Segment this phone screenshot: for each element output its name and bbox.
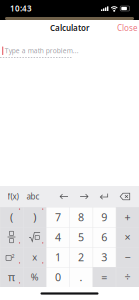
staticText: 10:43: [10, 3, 32, 14]
button[interactable]: 2: [69, 247, 93, 267]
staticText: Type a math problem...: [5, 46, 79, 55]
button[interactable]: 3: [93, 247, 116, 267]
button[interactable]: 6: [93, 227, 116, 247]
button[interactable]: ×: [116, 227, 139, 247]
staticText: 7: [55, 210, 61, 224]
staticText: Close: [117, 23, 138, 33]
staticText: π: [8, 270, 15, 284]
staticText: 5: [78, 230, 84, 244]
staticText: %: [31, 271, 39, 283]
button[interactable]: abc: [23, 186, 43, 207]
button[interactable]: 4: [46, 227, 69, 247]
staticText: f(x): [7, 191, 18, 202]
button[interactable]: 7: [46, 207, 69, 227]
button[interactable]: 2: [0, 247, 23, 267]
button[interactable]: Close: [112, 19, 139, 37]
button[interactable]: Delete: [114, 186, 136, 207]
staticText: x: [32, 251, 37, 263]
staticText: 2: [12, 252, 15, 260]
staticText: Calculator: [50, 23, 89, 33]
button[interactable]: (: [0, 207, 23, 227]
staticText: (: [10, 210, 13, 224]
staticText: ×: [124, 230, 130, 244]
button[interactable]: %: [23, 267, 46, 287]
button[interactable]: 5: [69, 227, 93, 247]
button[interactable]: x: [23, 247, 46, 267]
staticText: −: [124, 250, 130, 264]
button[interactable]: π: [0, 267, 23, 287]
button[interactable]: 1: [46, 247, 69, 267]
staticText: 3: [101, 250, 107, 264]
staticText: abc: [26, 191, 39, 202]
button[interactable]: Return: [94, 186, 114, 207]
button[interactable]: .: [69, 267, 93, 287]
button[interactable]: 9: [93, 207, 116, 227]
button[interactable]: 0: [46, 267, 69, 287]
staticText: =: [101, 270, 107, 284]
staticText: 1: [55, 250, 61, 264]
staticText: 6: [101, 230, 107, 244]
button[interactable]: [0, 227, 23, 247]
staticText: +: [124, 210, 130, 224]
staticText: 8: [78, 210, 84, 224]
staticText: 0: [55, 270, 61, 284]
button[interactable]: f(x): [3, 186, 23, 207]
button[interactable]: ): [23, 207, 46, 227]
button[interactable]: −: [116, 247, 139, 267]
staticText: .: [80, 270, 83, 284]
button[interactable]: +: [116, 207, 139, 227]
staticText: ): [33, 210, 36, 224]
button[interactable]: 8: [69, 207, 93, 227]
staticText: 9: [101, 210, 107, 224]
staticText: 4: [55, 230, 61, 244]
staticText: ÷: [124, 270, 130, 284]
button[interactable]: =: [93, 267, 116, 287]
button[interactable]: Move right: [74, 186, 94, 207]
staticText: 2: [78, 250, 84, 264]
button[interactable]: [23, 227, 46, 247]
button[interactable]: Move left: [54, 186, 74, 207]
button[interactable]: ÷: [116, 267, 139, 287]
